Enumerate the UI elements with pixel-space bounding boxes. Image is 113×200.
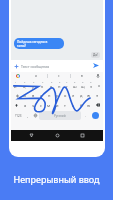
- staticText: а: [40, 93, 43, 98]
- button[interactable]: я: [25, 72, 47, 80]
- staticText: 5: [51, 81, 53, 84]
- staticText: 8: [74, 81, 76, 84]
- staticText: ч: [32, 103, 35, 108]
- staticText: 0: [90, 81, 92, 84]
- button[interactable]: Google: [11, 72, 25, 80]
- staticText: р: [56, 93, 59, 98]
- button[interactable]: Shift: [11, 100, 21, 110]
- button[interactable]: ж: [85, 90, 93, 100]
- staticText: б: [80, 103, 83, 108]
- button[interactable]: Пойдешь сегодня в: [14, 38, 64, 49]
- button[interactable]: я: [21, 100, 29, 110]
- button[interactable]: ,: [24, 111, 31, 120]
- button[interactable]: Home: [52, 130, 63, 141]
- staticText: с: [40, 103, 42, 108]
- button[interactable]: и: [53, 100, 61, 110]
- button[interactable]: б: [77, 100, 85, 110]
- staticText: т: [64, 103, 66, 108]
- button[interactable]: ь: [69, 100, 77, 110]
- button[interactable]: Enter: [89, 111, 102, 120]
- staticText: м: [47, 103, 51, 108]
- button[interactable]: в: [71, 72, 93, 80]
- staticText: с: [58, 74, 60, 78]
- staticText: л: [72, 93, 75, 98]
- button[interactable]: Recent apps: [77, 130, 88, 141]
- button[interactable]: 9: [79, 80, 87, 90]
- staticText: 9: [82, 81, 84, 84]
- staticText: п: [48, 93, 51, 98]
- staticText: Текст сообщения: [21, 64, 50, 69]
- button[interactable]: ?123: [12, 111, 24, 120]
- button[interactable]: с: [37, 100, 45, 110]
- button[interactable]: д: [77, 90, 85, 100]
- staticText: ж: [87, 93, 91, 98]
- button[interactable]: Backspace: [93, 100, 103, 110]
- button[interactable]: Да!: [91, 52, 100, 58]
- button[interactable]: 5: [47, 80, 55, 90]
- button[interactable]: э: [93, 90, 101, 100]
- staticText: ь: [72, 103, 75, 108]
- button[interactable]: м: [45, 100, 53, 110]
- staticText: и: [56, 103, 59, 108]
- button[interactable]: л: [69, 90, 77, 100]
- staticText: е: [50, 84, 53, 89]
- staticText: в: [81, 74, 83, 78]
- button[interactable]: о: [61, 90, 69, 100]
- staticText: щ: [81, 84, 85, 89]
- button[interactable]: т: [61, 100, 69, 110]
- staticText: я: [35, 74, 37, 78]
- staticText: 2: [24, 81, 26, 84]
- staticText: х: [98, 83, 101, 88]
- button[interactable]: 6: [55, 80, 63, 90]
- staticText: 3: [33, 81, 35, 84]
- button[interactable]: ф: [13, 90, 21, 100]
- staticText: Да!: [93, 53, 98, 57]
- staticText: к: [41, 84, 44, 89]
- button[interactable]: 0: [87, 80, 95, 90]
- staticText: Русский: [54, 114, 66, 118]
- button[interactable]: Текст сообщения: [21, 60, 90, 72]
- staticText: й: [14, 84, 17, 89]
- button[interactable]: ч: [29, 100, 37, 110]
- staticText: ш: [73, 84, 77, 89]
- staticText: Непрерывный ввод: [0, 173, 113, 185]
- button[interactable]: ы: [21, 90, 29, 100]
- button[interactable]: Русский: [39, 111, 81, 120]
- button[interactable]: Add attachment: [11, 61, 21, 71]
- staticText: в: [32, 93, 35, 98]
- button[interactable]: 7: [63, 80, 71, 90]
- button[interactable]: р: [53, 90, 61, 100]
- button[interactable]: 3: [29, 80, 38, 90]
- button[interactable]: п: [45, 90, 53, 100]
- staticText: ф: [16, 93, 19, 98]
- staticText: ц: [23, 84, 26, 89]
- staticText: я: [24, 103, 27, 108]
- staticText: 7: [66, 81, 68, 84]
- staticText: ю: [87, 103, 91, 108]
- staticText: ,: [27, 113, 28, 118]
- button[interactable]: Back: [26, 130, 37, 141]
- staticText: кино?: [17, 44, 26, 48]
- button[interactable]: а: [37, 90, 45, 100]
- button[interactable]: ю: [85, 100, 93, 110]
- staticText: Пойдешь сегодня в: [17, 40, 48, 44]
- button[interactable]: Send: [90, 60, 102, 72]
- staticText: .: [85, 113, 86, 118]
- staticText: ы: [23, 93, 27, 98]
- staticText: 1: [15, 81, 17, 84]
- button[interactable]: Change language: [31, 111, 39, 120]
- button[interactable]: в: [29, 90, 37, 100]
- button[interactable]: 1: [11, 80, 20, 90]
- button[interactable]: 8: [71, 80, 79, 90]
- staticText: о: [64, 93, 67, 98]
- button[interactable]: с: [48, 72, 70, 80]
- button[interactable]: 2: [20, 80, 29, 90]
- button[interactable]: х: [95, 80, 103, 90]
- staticText: ?123: [15, 114, 22, 118]
- staticText: э: [96, 93, 98, 98]
- button[interactable]: 4: [38, 80, 47, 90]
- staticText: д: [80, 93, 83, 98]
- staticText: 6: [59, 81, 61, 84]
- button[interactable]: Voice input: [93, 72, 103, 80]
